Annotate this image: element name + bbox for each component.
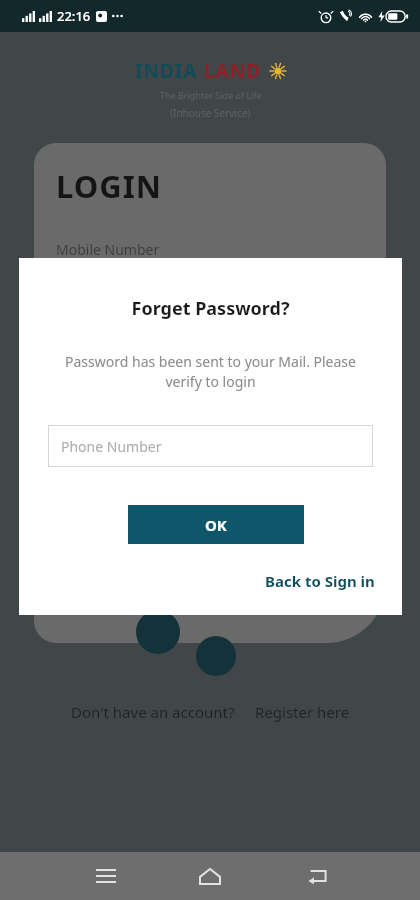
button[interactable]: Recent apps bbox=[88, 858, 124, 894]
button[interactable]: Register here bbox=[255, 702, 350, 722]
button[interactable]: Back bbox=[300, 858, 336, 894]
staticText: Register here bbox=[255, 702, 350, 722]
staticText: INDIA bbox=[135, 58, 198, 84]
button[interactable]: Home bbox=[190, 856, 230, 896]
staticText: Don't have an account? bbox=[71, 702, 235, 722]
staticText: OK bbox=[205, 515, 227, 535]
button[interactable]: Phone Number bbox=[48, 425, 373, 467]
staticText: The Brighter Side of Life bbox=[160, 89, 262, 101]
staticText: Forget Password? bbox=[19, 296, 402, 321]
button[interactable]: OK bbox=[128, 505, 304, 544]
staticText: (Inhouse Service) bbox=[170, 106, 251, 120]
staticText: 22:16 bbox=[57, 7, 91, 25]
button[interactable]: Back to Sign in bbox=[265, 571, 375, 591]
staticText: Password has been sent to your Mail. Ple… bbox=[65, 352, 356, 392]
staticText: Back to Sign in bbox=[265, 571, 375, 591]
staticText: LOGIN bbox=[56, 165, 162, 207]
staticText: LAND bbox=[204, 58, 262, 84]
staticText: Phone Number bbox=[61, 437, 162, 456]
staticText: Mobile Number bbox=[56, 240, 160, 259]
